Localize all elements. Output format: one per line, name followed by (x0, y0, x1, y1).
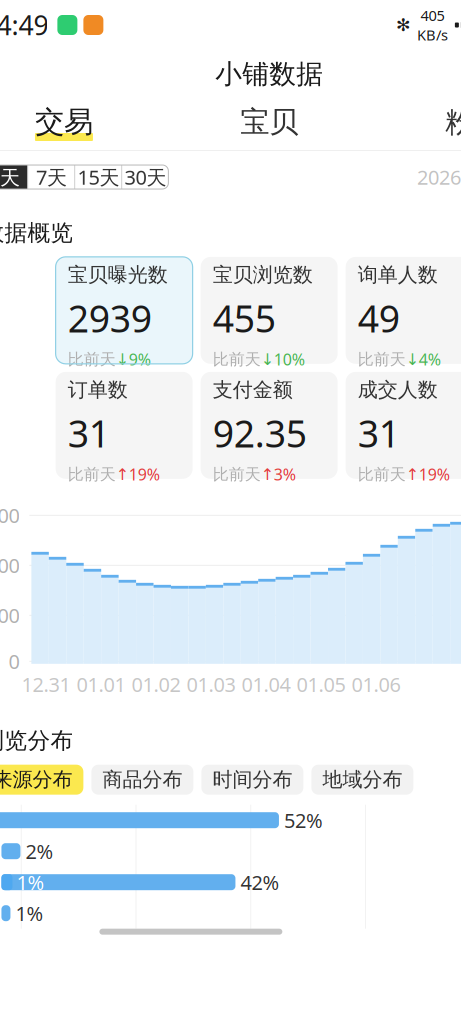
staticText: 成交人数 (358, 378, 438, 402)
staticText: 1% (15, 900, 43, 926)
staticText: 比前天 (68, 465, 116, 484)
staticText: 数据概览 (0, 219, 73, 247)
staticText: 30天 (124, 164, 166, 190)
button[interactable]: 时间分布 (201, 765, 303, 795)
button[interactable]: 地域分布 (311, 765, 413, 795)
staticText: ↓ (261, 350, 274, 368)
staticText: 01.02 (131, 671, 180, 697)
staticText: 31 (358, 408, 400, 458)
staticText: 10% (274, 349, 305, 370)
staticText: ↑ (406, 465, 419, 483)
staticText: 比前天 (213, 350, 261, 369)
staticText: 2939 (68, 293, 152, 343)
staticText: 14:49 (0, 7, 48, 43)
button[interactable]: 商品分布 (91, 765, 193, 795)
staticText: ↑ (261, 465, 274, 483)
staticText: 来源分布 (0, 767, 72, 792)
button[interactable]: 宝贝曝光数 (56, 257, 193, 364)
staticText: 01.03 (186, 671, 235, 697)
staticText: 浏览分布 (0, 727, 73, 755)
staticText: ↑ (116, 465, 129, 483)
staticText: 宝贝浏览数 (213, 263, 313, 287)
staticText: 商品分布 (102, 767, 182, 792)
staticText: 49 (358, 293, 400, 343)
button[interactable]: 询单人数 (346, 257, 461, 364)
staticText: 12.31 (21, 671, 70, 697)
staticText: 宝贝曝光数 (68, 263, 168, 287)
staticText: 01.05 (296, 671, 345, 697)
staticText: 31 (68, 408, 110, 458)
staticText: ✻ (396, 15, 411, 35)
staticText: 01.06 (351, 671, 400, 697)
staticText: 01.01 (76, 671, 125, 697)
staticText: 比前天 (213, 465, 261, 484)
staticText: 1% (16, 869, 44, 895)
staticText: 3% (274, 464, 296, 485)
staticText: 地域分布 (322, 767, 402, 792)
staticText: 19% (129, 464, 160, 485)
staticText: 9% (129, 349, 151, 370)
button[interactable]: 1天 (0, 165, 27, 189)
staticText: 粉丝 (445, 104, 461, 140)
staticText: 比前天 (68, 350, 116, 369)
staticText: 15天 (77, 164, 119, 190)
staticText: 订单数 (68, 378, 128, 402)
staticText: 42% (240, 869, 279, 895)
staticText: 支付金额 (213, 378, 293, 402)
staticText: 2% (25, 838, 53, 864)
staticText: 小铺数据 (215, 58, 323, 90)
staticText: 比前天 (358, 465, 406, 484)
button[interactable]: 宝贝 (166, 98, 372, 150)
staticText: 宝贝 (240, 104, 298, 140)
staticText: 4% (419, 349, 441, 370)
button[interactable]: 支付金额 (201, 372, 338, 479)
staticText: 1000 (0, 602, 19, 629)
staticText: ↓ (406, 350, 419, 368)
staticText: 1天 (0, 164, 20, 190)
staticText: 2000 (0, 552, 19, 579)
staticText: 询单人数 (358, 263, 438, 287)
button[interactable]: 15天 (75, 165, 121, 189)
staticText: ↓ (116, 350, 129, 368)
staticText: 7天 (36, 164, 67, 190)
button[interactable]: 30天 (122, 165, 168, 189)
button[interactable]: 7天 (28, 165, 74, 189)
staticText: 时间分布 (212, 767, 292, 792)
button[interactable]: 宝贝浏览数 (201, 257, 338, 364)
staticText: 92.35 (213, 408, 307, 458)
button[interactable]: 来源分布 (0, 765, 83, 795)
staticText: 19% (419, 464, 450, 485)
staticText: 比前天 (358, 350, 406, 369)
staticText: 455 (213, 293, 276, 343)
staticText: 交易 (35, 104, 93, 140)
staticText: 52% (284, 807, 323, 833)
staticText: 405 (420, 5, 444, 25)
staticText: KB/s (417, 25, 448, 44)
button[interactable]: 交易 (0, 98, 167, 150)
staticText: 0 (8, 648, 19, 675)
staticText: 01.04 (241, 671, 290, 697)
staticText: 2026-01-06数据 (417, 164, 461, 190)
staticText: 3000 (0, 502, 19, 529)
button[interactable]: 成交人数 (346, 372, 461, 479)
button[interactable]: 粉丝 (372, 98, 461, 150)
button[interactable]: 订单数 (56, 372, 193, 479)
